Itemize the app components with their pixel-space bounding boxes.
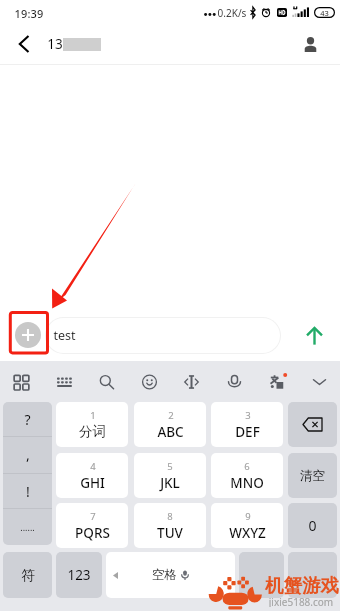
- staticText: test: [53, 327, 76, 344]
- button[interactable]: Hide keyboard: [298, 361, 340, 402]
- button[interactable]: 符: [3, 552, 52, 598]
- button[interactable]: Layouts: [0, 361, 43, 402]
- button[interactable]: Space: [106, 552, 235, 598]
- button[interactable]: 4: [56, 453, 128, 498]
- staticText: 19:39: [9, 6, 49, 20]
- staticText: 符: [21, 567, 35, 584]
- staticText: !: [26, 482, 30, 501]
- staticText: 2: [168, 409, 174, 422]
- staticText: PQRS: [75, 524, 110, 542]
- button[interactable]: 1: [56, 402, 128, 447]
- staticText: ......: [20, 521, 35, 533]
- button[interactable]: Search: [85, 361, 128, 402]
- staticText: JKL: [160, 474, 180, 492]
- staticText: 机蟹游戏: [263, 574, 340, 596]
- button[interactable]: Back: [8, 32, 40, 56]
- staticText: MNO: [230, 474, 264, 492]
- button[interactable]: ?: [3, 402, 52, 436]
- staticText: 0.2K/s: [216, 6, 248, 20]
- staticText: 0: [308, 516, 317, 535]
- button[interactable]: 7: [56, 503, 128, 548]
- staticText: WXYZ: [229, 524, 266, 542]
- staticText: GHI: [80, 474, 105, 492]
- button[interactable]: 13: [45, 24, 225, 64]
- staticText: 43: [320, 8, 329, 18]
- staticText: 空格: [152, 567, 177, 583]
- staticText: TUV: [157, 524, 183, 542]
- button[interactable]: [239, 552, 284, 598]
- button[interactable]: [288, 402, 337, 447]
- staticText: ABC: [157, 423, 184, 441]
- staticText: 123: [67, 566, 91, 584]
- button[interactable]: 6: [211, 453, 283, 498]
- staticText: 13: [47, 35, 63, 53]
- button[interactable]: Voice input: [213, 361, 256, 402]
- button[interactable]: [288, 552, 337, 598]
- staticText: DEF: [235, 423, 260, 441]
- button[interactable]: 0: [288, 503, 337, 548]
- staticText: 9: [245, 510, 251, 523]
- staticText: 清空: [300, 468, 325, 484]
- staticText: 6: [244, 460, 250, 473]
- button[interactable]: Translate: [255, 361, 298, 402]
- button[interactable]: 9: [211, 503, 283, 548]
- button[interactable]: Add attachment: [15, 322, 41, 348]
- staticText: 分词: [79, 423, 106, 440]
- button[interactable]: Keyboard: [43, 361, 86, 402]
- staticText: ?: [24, 410, 31, 429]
- staticText: jixie5188.com: [260, 595, 340, 607]
- button[interactable]: 8: [134, 503, 206, 548]
- staticText: 7: [90, 510, 96, 523]
- button[interactable]: Emoji: [128, 361, 171, 402]
- button[interactable]: ......: [3, 508, 52, 545]
- staticText: ,: [26, 445, 30, 464]
- staticText: 1: [90, 409, 96, 422]
- staticText: 4: [90, 460, 96, 473]
- button[interactable]: 清空: [288, 453, 337, 498]
- staticText: 5: [167, 460, 173, 473]
- button[interactable]: ,: [3, 436, 52, 472]
- button[interactable]: 3: [211, 402, 283, 447]
- button[interactable]: 123: [56, 552, 102, 598]
- button[interactable]: 2: [134, 402, 206, 447]
- button[interactable]: Send: [300, 322, 328, 350]
- button[interactable]: Move cursor: [170, 361, 213, 402]
- staticText: 3: [245, 409, 251, 422]
- button[interactable]: 5: [134, 453, 206, 498]
- staticText: 8: [167, 510, 173, 523]
- button[interactable]: test: [45, 317, 281, 354]
- button[interactable]: !: [3, 473, 52, 509]
- button[interactable]: Profile: [294, 28, 326, 60]
